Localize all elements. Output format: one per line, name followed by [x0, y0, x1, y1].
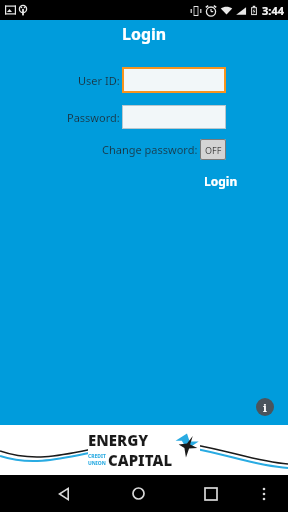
- staticText: Login: [204, 173, 238, 189]
- staticText: Password:: [67, 110, 120, 125]
- button[interactable]: Recent apps: [191, 475, 231, 512]
- button[interactable]: Information: [256, 398, 274, 416]
- staticText: OFF: [205, 144, 222, 156]
- button[interactable]: [122, 67, 226, 93]
- staticText: CAPITAL: [108, 450, 173, 470]
- button[interactable]: OFF: [200, 139, 226, 160]
- staticText: CREDIT: [88, 453, 106, 460]
- staticText: 3:44: [262, 3, 284, 18]
- staticText: Change password:: [102, 142, 198, 157]
- button[interactable]: [122, 105, 226, 129]
- staticText: Login: [122, 23, 167, 45]
- button[interactable]: Back: [44, 475, 84, 512]
- button[interactable]: Login: [200, 170, 242, 192]
- staticText: i: [263, 400, 267, 415]
- button[interactable]: More options: [249, 479, 279, 509]
- button[interactable]: Home: [118, 475, 158, 512]
- staticText: User ID:: [78, 73, 120, 88]
- staticText: ENERGY: [88, 430, 149, 450]
- staticText: UNION: [88, 460, 106, 467]
